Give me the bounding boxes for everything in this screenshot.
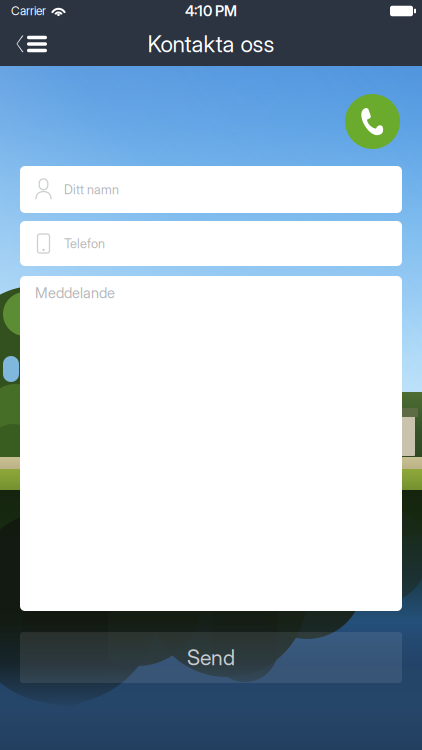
- button[interactable]: Ditt namn: [20, 166, 402, 213]
- staticText: 4:10 PM: [185, 2, 237, 20]
- staticText: Kontakta oss: [147, 30, 274, 58]
- button[interactable]: Send: [20, 632, 402, 683]
- staticText: Meddelande: [35, 284, 115, 302]
- staticText: Telefon: [64, 236, 105, 251]
- button[interactable]: Menu: [0, 25, 61, 62]
- button[interactable]: Call us: [345, 94, 400, 149]
- button[interactable]: Telefon: [20, 221, 402, 266]
- staticText: Send: [187, 645, 235, 670]
- button[interactable]: Meddelande: [20, 276, 402, 611]
- staticText: Carrier: [11, 4, 46, 18]
- staticText: Ditt namn: [64, 182, 119, 197]
